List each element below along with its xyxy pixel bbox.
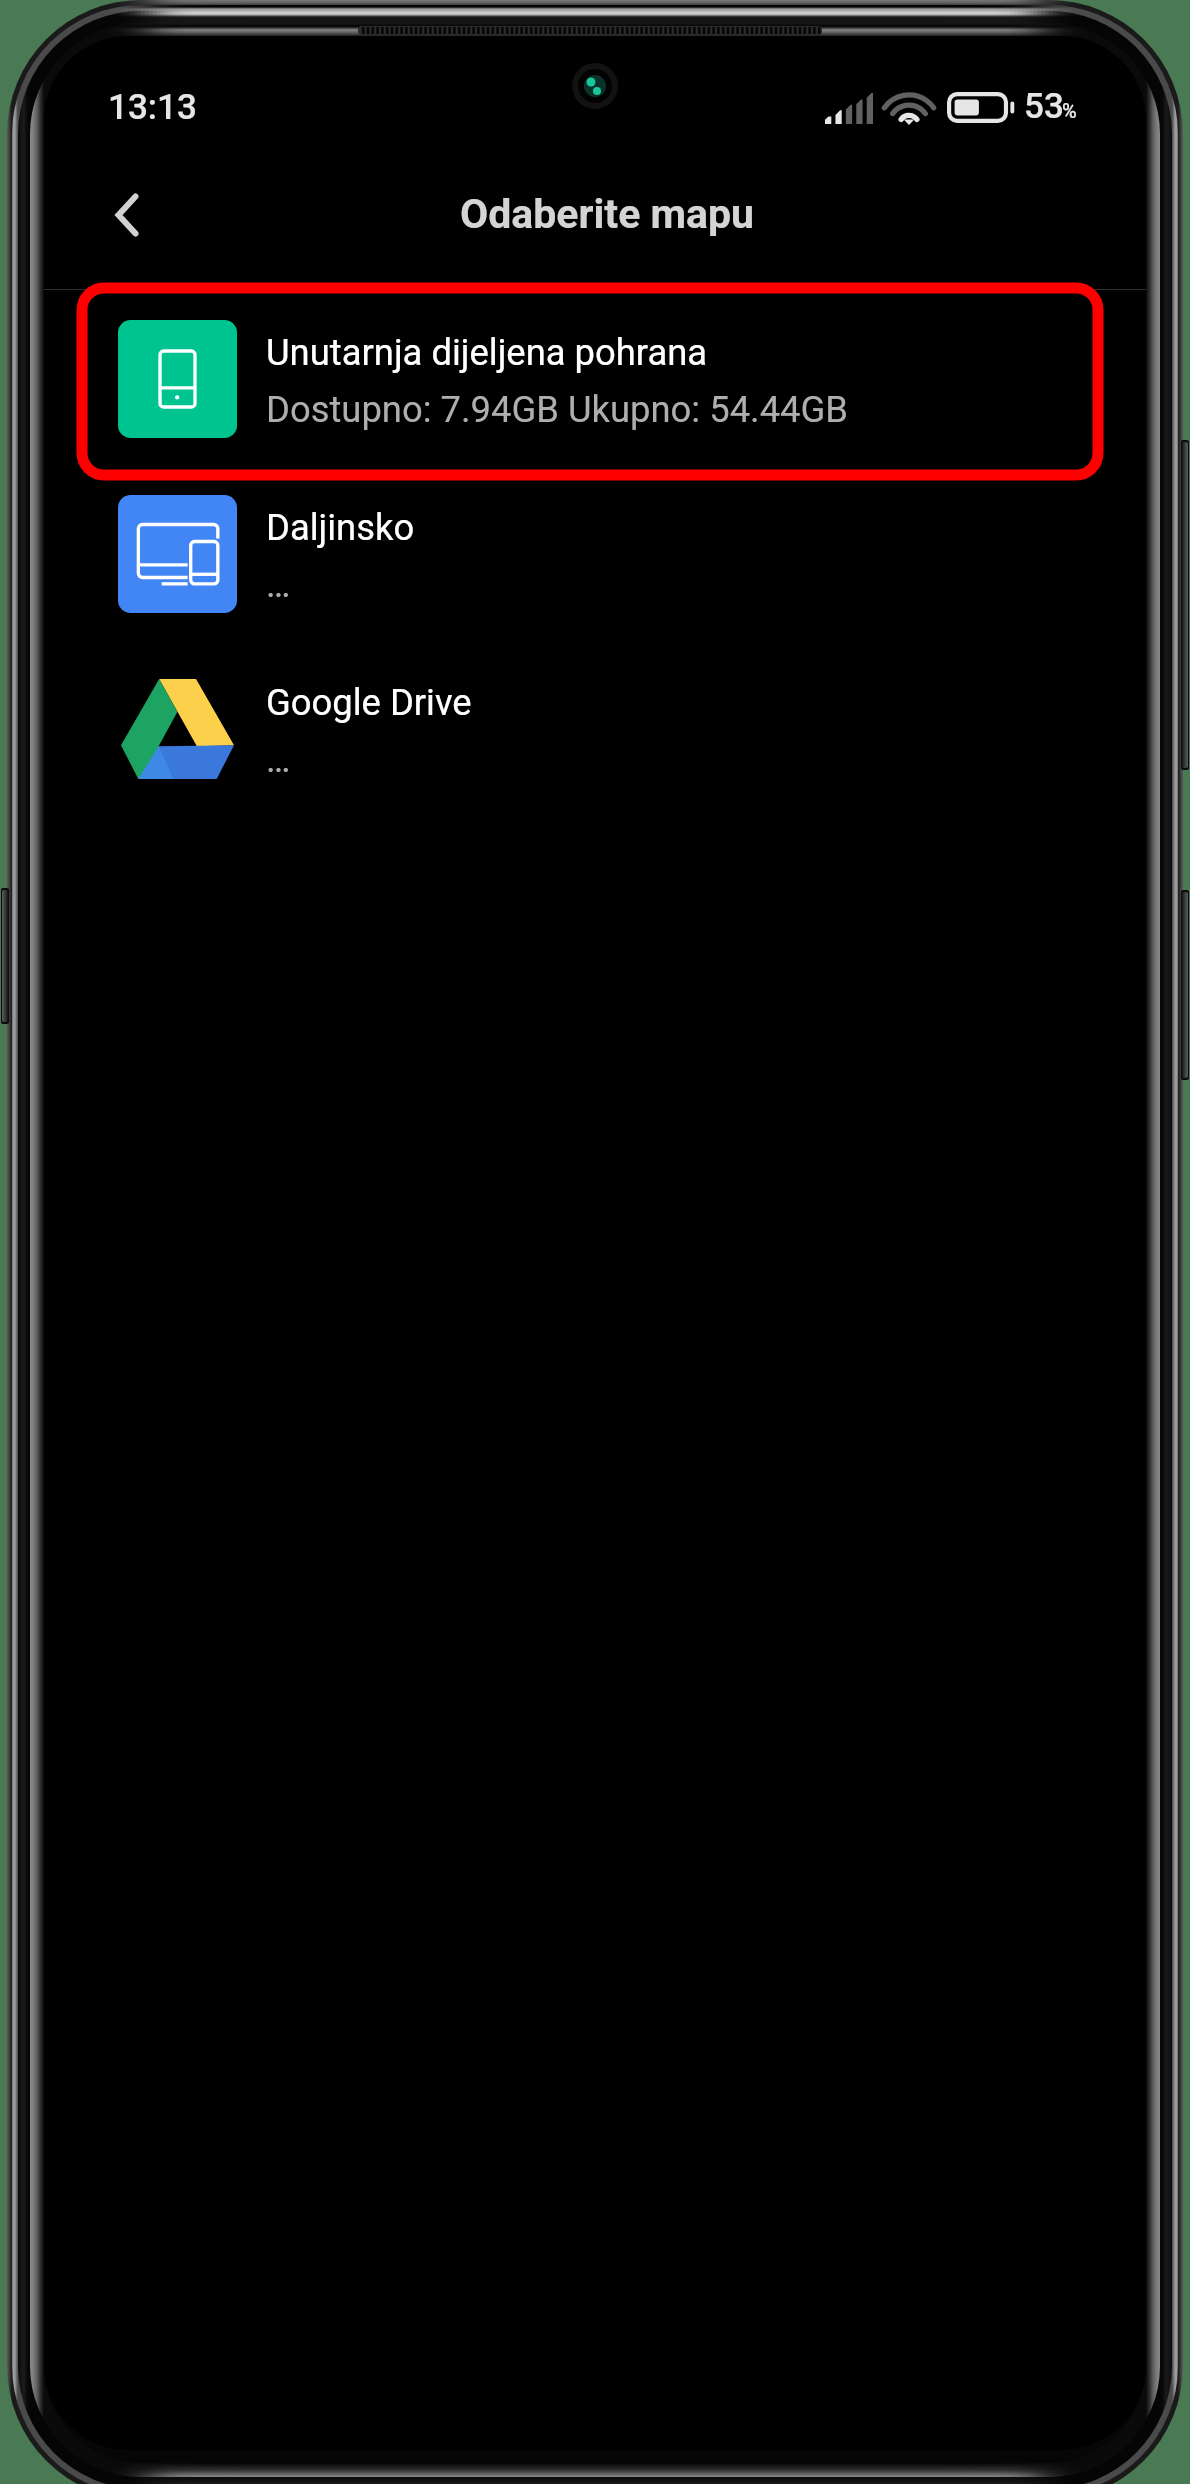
staticText: Google Drive (266, 681, 472, 724)
button[interactable]: Daljinsko (44, 466, 1146, 641)
staticText: Daljinsko (266, 506, 415, 549)
staticText: Dostupno: 7.94GB Ukupno: 54.44GB (266, 388, 849, 431)
staticText: Odaberite mapu (460, 190, 755, 238)
staticText: … (266, 563, 291, 606)
staticText: % (1062, 99, 1077, 122)
staticText: Unutarnja dijeljena pohrana (266, 331, 708, 374)
button[interactable]: Unutarnja dijeljena pohrana (44, 291, 1146, 466)
staticText: 13:13 (108, 87, 197, 128)
button[interactable]: Google Drive (44, 641, 1146, 816)
staticText: … (266, 738, 291, 781)
staticText: 53 (1024, 86, 1064, 127)
button[interactable]: Back (79, 167, 175, 263)
